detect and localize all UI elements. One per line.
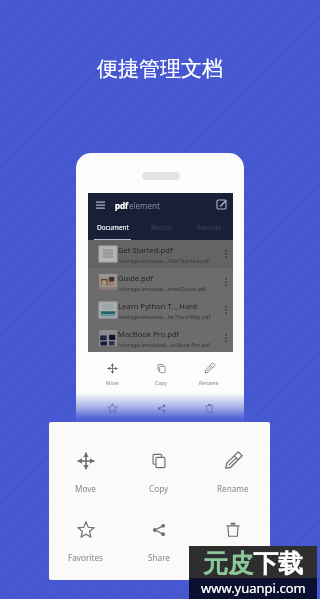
- button[interactable]: More options: [220, 244, 232, 264]
- staticText: Share: [148, 552, 170, 563]
- staticText: www.yuanpi.com: [201, 579, 306, 597]
- staticText: /storage/emulate...he Hard Way.pdf: [118, 313, 211, 320]
- staticText: Move: [106, 380, 119, 387]
- button[interactable]: Get Started.pdf: [88, 240, 233, 268]
- staticText: Share: [154, 420, 168, 425]
- button[interactable]: Copy: [137, 352, 185, 392]
- staticText: 下载: [253, 548, 303, 579]
- staticText: Guide.pdf: [118, 273, 154, 283]
- staticText: Favorites: [102, 420, 124, 425]
- button[interactable]: More options: [220, 328, 232, 348]
- staticText: 便捷管理文档: [97, 56, 223, 82]
- button[interactable]: Share: [137, 392, 185, 425]
- staticText: Learn Python T.., Hard Way.pdf: [118, 301, 220, 311]
- staticText: Favorites: [68, 552, 103, 563]
- button[interactable]: Menu: [93, 198, 107, 212]
- button[interactable]: Favorites: [49, 513, 122, 580]
- staticText: Move: [75, 483, 96, 494]
- button[interactable]: Guide.pdf: [88, 268, 233, 296]
- staticText: Document: [97, 223, 129, 232]
- button[interactable]: Learn Python T.., Hard Way.pdf: [88, 296, 233, 324]
- staticText: Rename: [199, 380, 219, 387]
- staticText: 元皮: [203, 548, 253, 579]
- button[interactable]: Edit: [214, 197, 229, 212]
- staticText: /storage/emulate...ores/Guide.pdf: [118, 285, 207, 292]
- staticText: /storage/emulated...acBook Pro.pdf: [118, 341, 211, 348]
- button[interactable]: Copy: [122, 444, 196, 513]
- staticText: Copy: [155, 380, 167, 387]
- staticText: Get Started.pdf: [118, 245, 173, 255]
- button[interactable]: Delete: [185, 392, 233, 425]
- button[interactable]: Favorites: [88, 392, 137, 425]
- button[interactable]: Document: [88, 216, 137, 240]
- button[interactable]: Rename: [185, 352, 233, 392]
- staticText: Recent: [151, 223, 172, 232]
- staticText: element: [129, 200, 160, 211]
- button[interactable]: Move: [88, 352, 137, 392]
- staticText: Delete: [221, 552, 246, 563]
- staticText: /storage/emulate.../Get Started.pdf: [118, 257, 209, 264]
- button[interactable]: More options: [220, 300, 232, 320]
- staticText: pdf: [115, 200, 129, 211]
- staticText: Copy: [149, 483, 169, 494]
- staticText: Delete: [201, 420, 217, 425]
- staticText: Favorite: [197, 223, 222, 232]
- button[interactable]: Recent: [137, 216, 185, 240]
- staticText: MacBook Pro.pdf: [118, 329, 180, 339]
- staticText: Rename: [217, 483, 249, 494]
- button[interactable]: Share: [122, 513, 196, 580]
- button[interactable]: Move: [49, 444, 122, 513]
- button[interactable]: Delete: [196, 513, 270, 580]
- button[interactable]: MacBook Pro.pdf: [88, 324, 233, 352]
- button[interactable]: Favorite: [185, 216, 233, 240]
- button[interactable]: More options: [220, 272, 232, 292]
- button[interactable]: Rename: [196, 444, 270, 513]
